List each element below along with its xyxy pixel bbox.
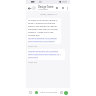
staticText: 10:24 AM	[28, 45, 37, 48]
button[interactable]: Camera	[59, 89, 63, 96]
button[interactable]: Back	[27, 5, 31, 11]
staticText: 5 members	[38, 8, 49, 11]
staticText: Today, March 14	[40, 13, 57, 16]
button[interactable]: Send	[64, 89, 68, 96]
button[interactable]: More options	[65, 5, 69, 11]
staticText: Hi team! The layout review is done. I mo…	[28, 19, 60, 37]
staticText: Type a message	[40, 91, 58, 94]
button[interactable]: Emoji	[28, 89, 32, 96]
staticText: design.example.com/review spec.example.c…	[28, 50, 64, 59]
staticText: design.example.com/review spec.example.c…	[28, 37, 57, 43]
button[interactable]: Video call	[55, 5, 60, 11]
staticText: Design Team	[38, 5, 54, 8]
button[interactable]: Call	[60, 5, 65, 11]
staticText: 10:28 AM	[28, 61, 37, 64]
button[interactable]: Attach	[34, 89, 38, 96]
